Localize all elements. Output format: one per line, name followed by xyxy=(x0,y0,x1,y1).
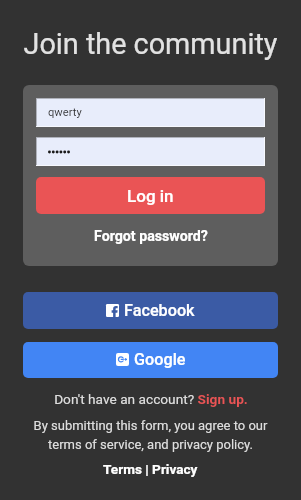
staticText: By submitting this form, you agree to ou… xyxy=(16,418,285,452)
staticText: Forgot password? xyxy=(94,228,208,245)
button[interactable]: Username xyxy=(36,98,265,127)
staticText: Terms | Privacy xyxy=(103,461,198,477)
button[interactable]: Forgot password? xyxy=(36,224,265,248)
button[interactable]: Don't have an account? Sign up. xyxy=(0,390,301,408)
button[interactable]: Log in xyxy=(36,177,265,214)
button[interactable]: Google xyxy=(23,342,278,378)
button[interactable]: Facebook xyxy=(23,292,278,329)
staticText: Facebook xyxy=(124,301,195,320)
staticText: Join the community xyxy=(0,27,301,61)
staticText: Log in xyxy=(127,186,174,206)
staticText: Google xyxy=(134,350,186,369)
button[interactable]: Password xyxy=(36,137,265,166)
staticText: qwerty xyxy=(48,106,82,119)
staticText: Don't have an account? Sign up. xyxy=(54,391,248,407)
button[interactable]: Terms | Privacy xyxy=(0,460,301,478)
